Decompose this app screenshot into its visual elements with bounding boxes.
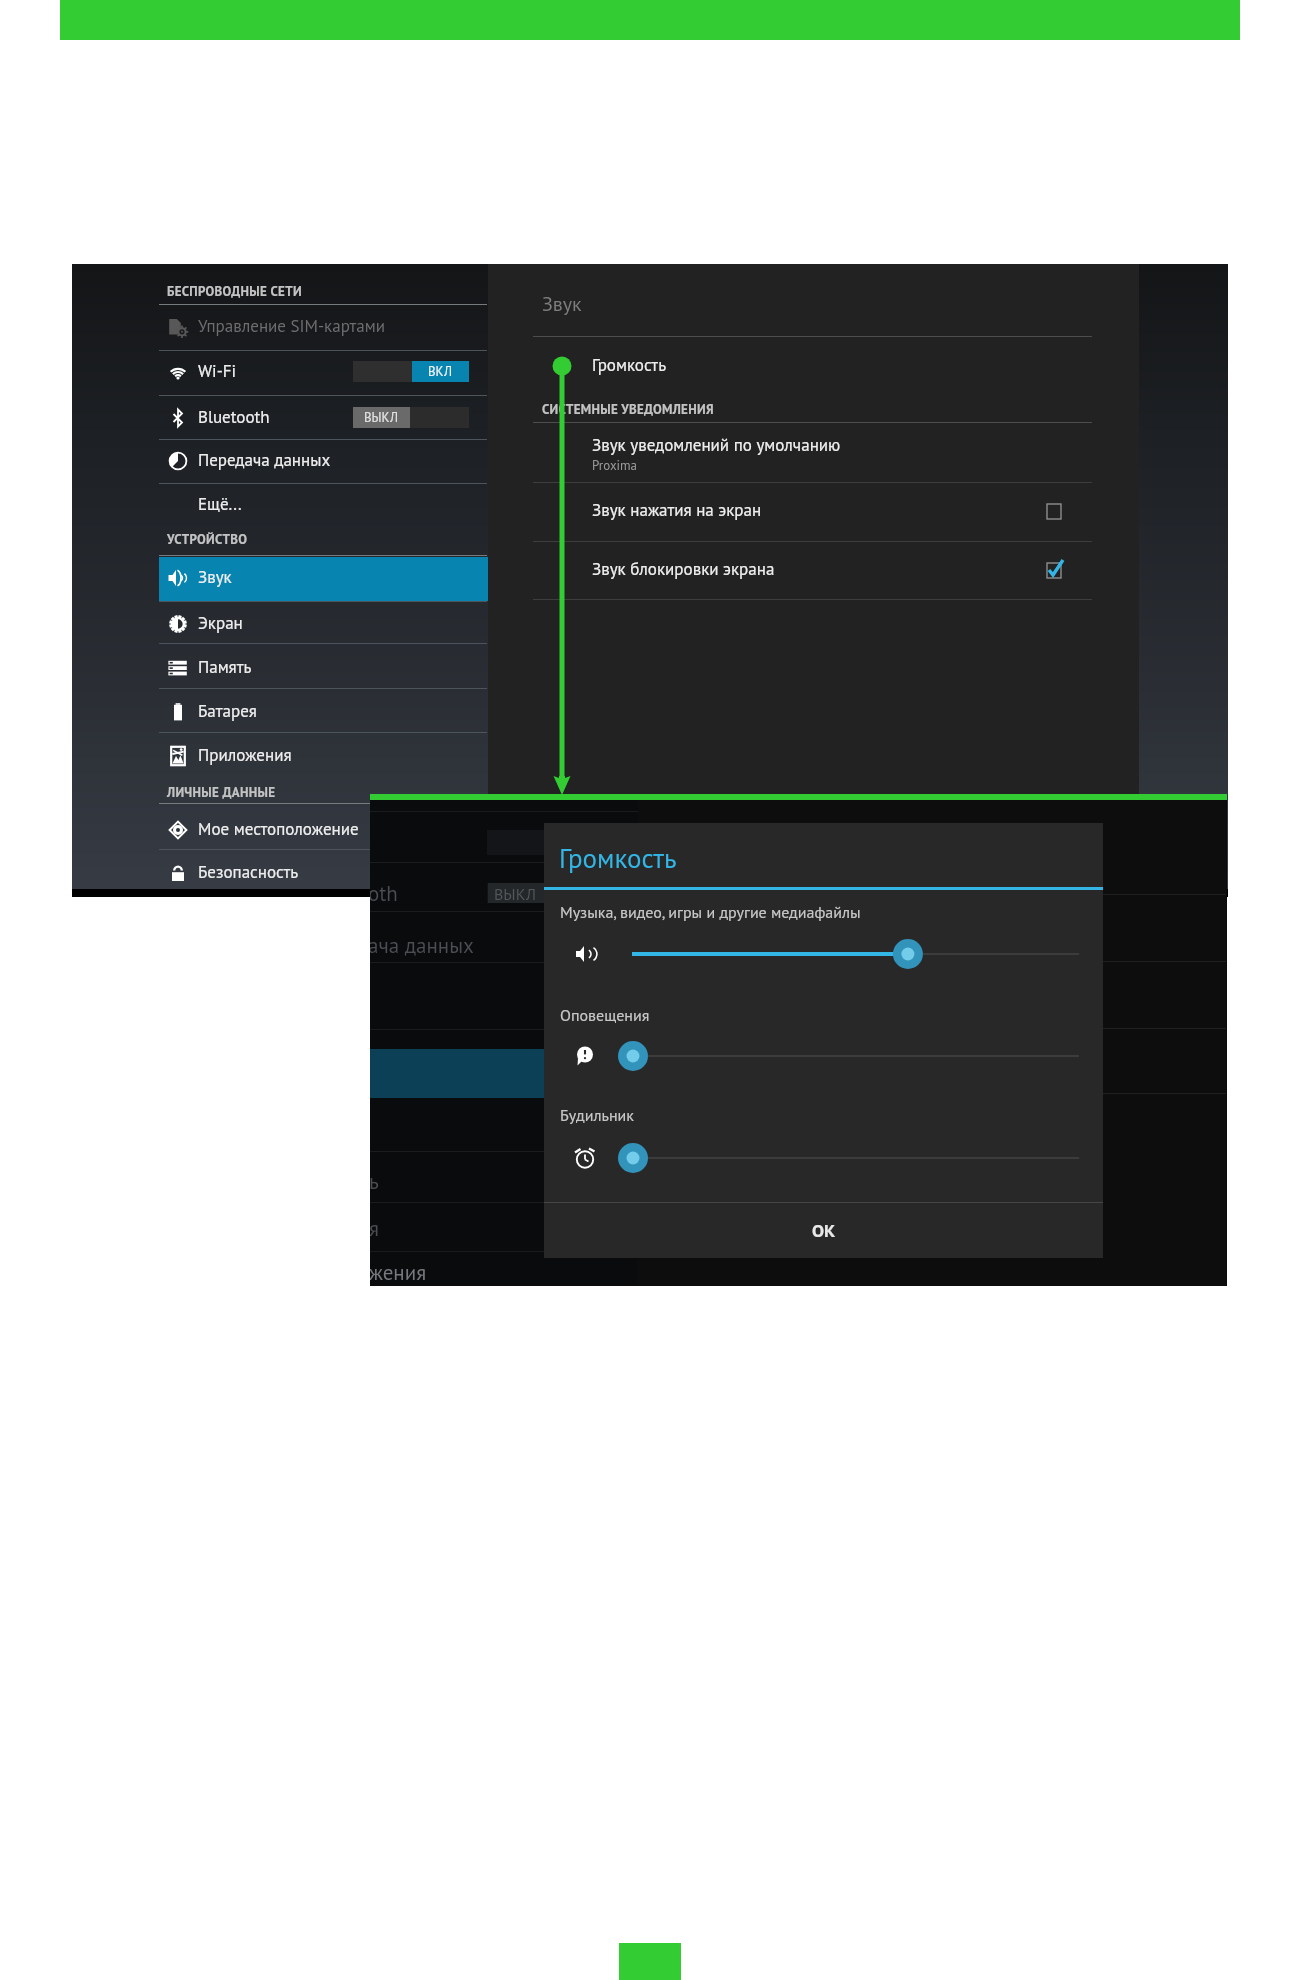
staticText: Экран: [198, 612, 243, 634]
staticText: Bluetooth: [198, 406, 270, 428]
staticText: УСТРОЙСТВО: [167, 531, 248, 548]
button[interactable]: OK: [544, 1203, 1103, 1258]
staticText: Батарея: [198, 700, 257, 722]
staticText: жения: [370, 1259, 427, 1286]
staticText: Мое местоположение: [198, 818, 359, 840]
staticText: ВЫКЛ: [494, 884, 536, 905]
button[interactable]: Volume slider: [544, 1034, 1103, 1078]
staticText: Ещё...: [198, 493, 242, 515]
button[interactable]: Wi-Fi: [72, 350, 488, 394]
button[interactable]: Управление SIM-картами: [72, 305, 488, 349]
button[interactable]: Звук: [72, 556, 488, 600]
button[interactable]: Screen lock sound checkbox, checked: [1040, 555, 1068, 583]
staticText: я: [370, 1215, 379, 1242]
staticText: Proxima: [592, 457, 638, 474]
staticText: ь: [370, 1168, 379, 1195]
staticText: Приложения: [198, 744, 292, 766]
button[interactable]: Память: [72, 646, 488, 690]
staticText: Звук блокировки экрана: [592, 558, 775, 580]
button[interactable]: Bluetooth: [72, 396, 488, 440]
staticText: Память: [198, 656, 252, 678]
button[interactable]: Звук: [159, 557, 488, 601]
staticText: Звук нажатия на экран: [592, 499, 762, 521]
button[interactable]: Звук уведомлений по умолчанию: [488, 422, 1139, 482]
button[interactable]: Ещё...: [72, 483, 488, 527]
staticText: Громкость: [592, 354, 667, 376]
staticText: БЕСПРОВОДНЫЕ СЕТИ: [167, 283, 302, 300]
button[interactable]: Приложения: [72, 734, 488, 778]
button[interactable]: Volume slider: [544, 932, 1103, 976]
staticText: Передача данных: [198, 449, 331, 471]
staticText: oth: [370, 880, 398, 907]
staticText: Оповещения: [560, 1005, 650, 1026]
button[interactable]: Передача данных: [72, 439, 488, 483]
button[interactable]: Громкость: [488, 344, 1139, 388]
button[interactable]: Батарея: [72, 690, 488, 734]
staticText: Звук: [542, 291, 582, 317]
staticText: Будильник: [560, 1105, 634, 1126]
button[interactable]: Touch sounds checkbox, unchecked: [1040, 496, 1068, 524]
staticText: Управление SIM-картами: [198, 315, 386, 337]
button[interactable]: Звук блокировки экрана: [488, 548, 1139, 599]
button[interactable]: Экран: [72, 602, 488, 646]
staticText: СИСТЕМНЫЕ УВЕДОМЛЕНИЯ: [542, 401, 714, 418]
staticText: OK: [812, 1219, 836, 1242]
button[interactable]: Wi-Fi on: [353, 361, 469, 382]
staticText: Громкость: [559, 841, 677, 876]
button[interactable]: Мое местоположение: [72, 808, 488, 852]
staticText: Wi-Fi: [198, 360, 237, 382]
staticText: ВКЛ: [428, 363, 453, 380]
staticText: ВЫКЛ: [364, 409, 399, 426]
staticText: ача данных: [370, 932, 474, 959]
staticText: ЛИЧНЫЕ ДАННЫЕ: [167, 784, 276, 801]
button[interactable]: Звук нажатия на экран: [488, 489, 1139, 541]
staticText: Звук: [198, 566, 232, 588]
staticText: Звук уведомлений по умолчанию: [592, 434, 841, 456]
button[interactable]: Volume slider: [544, 1136, 1103, 1180]
staticText: Безопасность: [198, 861, 299, 883]
button[interactable]: Безопасность: [72, 851, 488, 895]
button[interactable]: Bluetooth off: [353, 407, 469, 428]
staticText: Музыка, видео, игры и другие медиафайлы: [560, 902, 861, 923]
